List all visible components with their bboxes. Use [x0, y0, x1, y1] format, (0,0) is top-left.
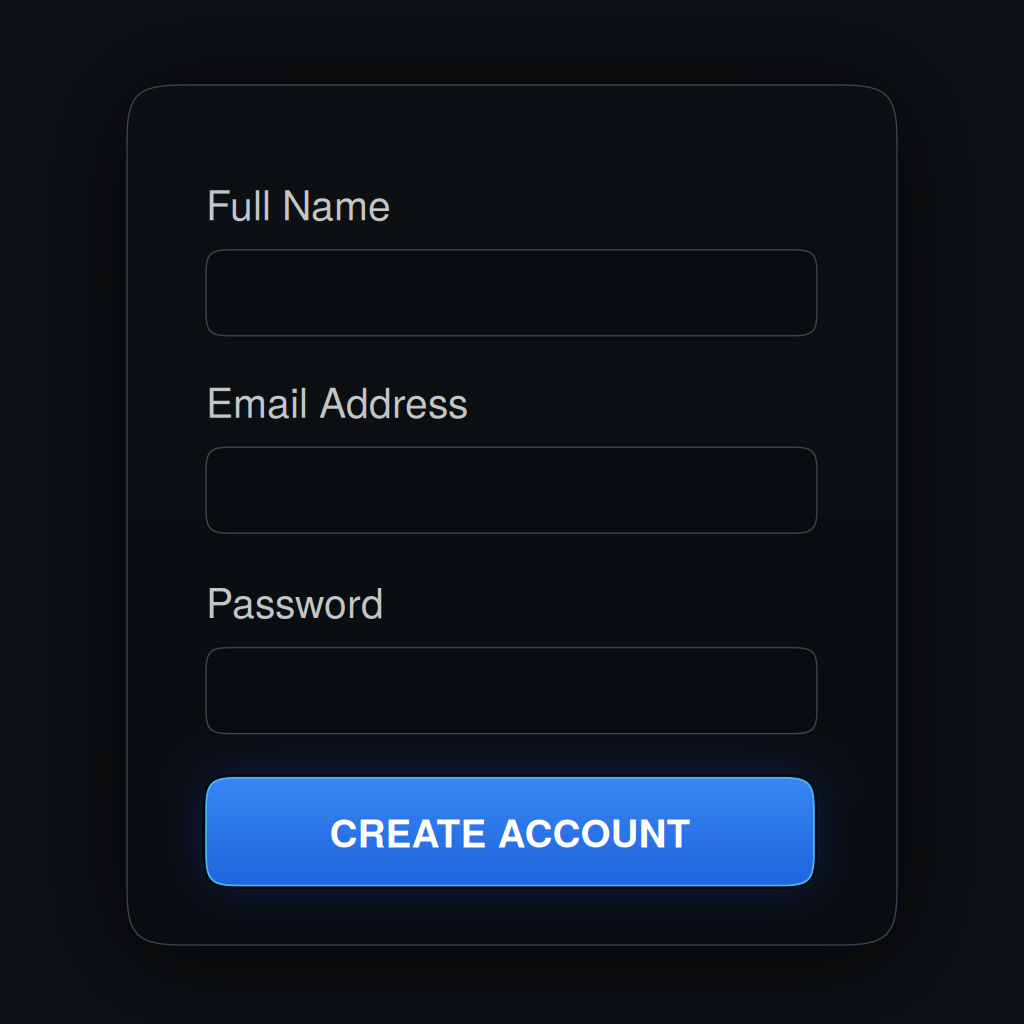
button[interactable]: CREATE ACCOUNT — [206, 778, 814, 886]
staticText: CREATE ACCOUNT — [329, 804, 690, 859]
staticText: Full Name — [206, 173, 391, 232]
staticText: Password — [206, 571, 384, 630]
staticText: Email Address — [206, 371, 468, 429]
